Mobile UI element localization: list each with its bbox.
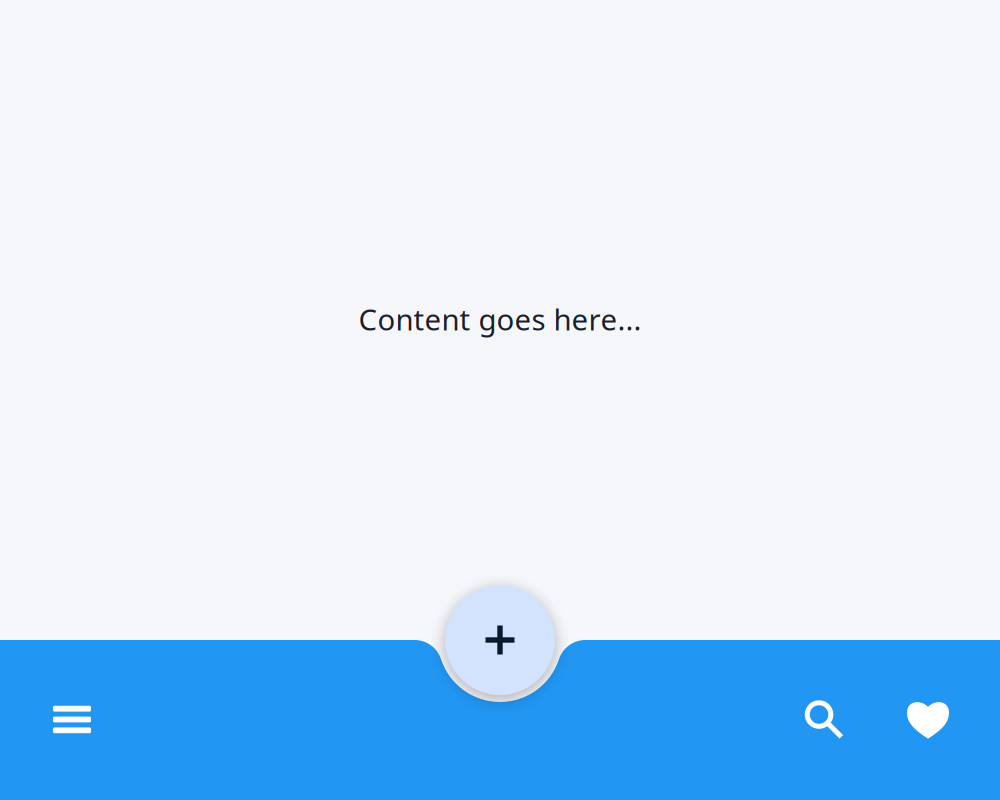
button[interactable]: Add bbox=[445, 585, 555, 695]
staticText: Content goes here... bbox=[358, 299, 641, 338]
button[interactable]: Search bbox=[785, 680, 863, 758]
button[interactable]: Menu bbox=[33, 680, 111, 758]
button[interactable]: Favorites bbox=[889, 680, 967, 758]
